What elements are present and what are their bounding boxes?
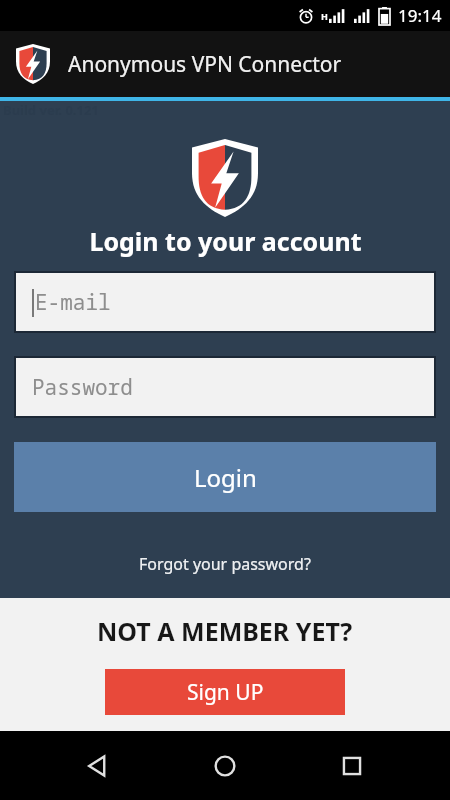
button[interactable]: Home	[196, 737, 254, 795]
staticText: Login	[194, 461, 257, 494]
staticText: Forgot your password?	[139, 553, 311, 575]
staticText: Anonymous VPN Connector	[68, 50, 342, 79]
staticText: Sign UP	[187, 678, 264, 707]
button[interactable]: E-mail	[16, 273, 434, 331]
staticText: Password	[32, 373, 133, 402]
button[interactable]: Back	[69, 737, 127, 795]
button[interactable]: Sign UP	[105, 669, 345, 715]
button[interactable]: Forgot your password?	[129, 548, 321, 580]
staticText: H	[321, 10, 328, 22]
staticText: E-mail	[35, 288, 111, 317]
button[interactable]: Password	[16, 358, 434, 416]
staticText: 19:14	[398, 4, 442, 27]
staticText: Login to your account	[89, 224, 362, 258]
button[interactable]: Login	[14, 442, 436, 512]
staticText: NOT A MEMBER YET?	[97, 614, 353, 648]
button[interactable]: Recent apps	[323, 737, 381, 795]
